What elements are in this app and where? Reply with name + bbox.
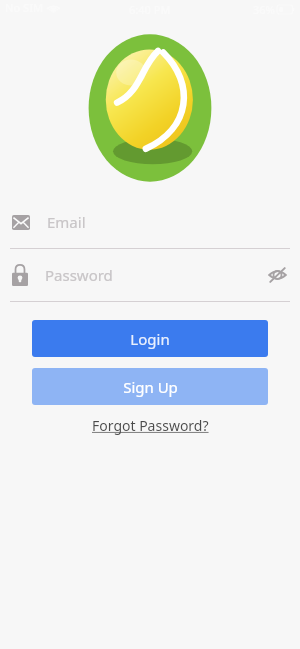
staticText: Forgot Password? — [92, 416, 209, 435]
button[interactable]: Sign Up — [32, 368, 268, 405]
button[interactable]: Forgot Password? — [82, 412, 219, 439]
button[interactable]: Password — [0, 249, 300, 301]
staticText: Login — [130, 329, 170, 349]
staticText: Email — [47, 212, 86, 232]
staticText: Password — [45, 265, 113, 285]
button[interactable]: Show password — [264, 262, 290, 288]
button[interactable]: Email — [0, 196, 300, 248]
staticText: Sign Up — [123, 377, 178, 397]
button[interactable]: Login — [32, 320, 268, 357]
